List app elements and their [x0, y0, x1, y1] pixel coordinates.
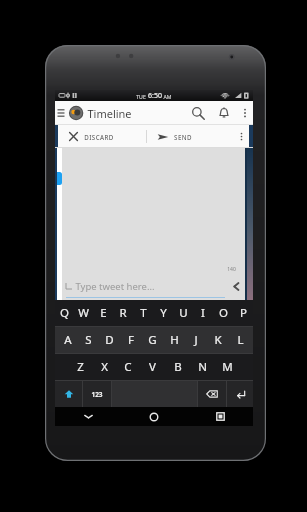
staticText: AM — [163, 93, 172, 100]
staticText: C — [124, 359, 132, 375]
button[interactable]: O — [213, 300, 233, 326]
staticText: 140 — [227, 266, 236, 273]
staticText: SEND — [174, 133, 192, 141]
button[interactable]: A — [57, 327, 78, 353]
button[interactable]: J — [185, 327, 207, 353]
button[interactable]: Shift — [55, 381, 82, 407]
button[interactable]: Backspace — [198, 381, 226, 407]
staticText: D — [105, 332, 114, 348]
button[interactable]: Open navigation drawer — [55, 101, 87, 125]
staticText: Z — [77, 359, 84, 375]
button[interactable]: I — [193, 300, 213, 326]
button[interactable]: M — [215, 354, 240, 380]
button[interactable]: S — [78, 327, 99, 353]
staticText: U — [179, 305, 188, 321]
staticText: Y — [160, 305, 167, 321]
button[interactable]: DISCARD — [59, 125, 146, 148]
button[interactable]: D — [99, 327, 120, 353]
staticText: J — [194, 332, 198, 348]
staticText: H — [170, 332, 179, 348]
button[interactable]: X — [92, 354, 116, 380]
button[interactable]: Previous — [227, 275, 245, 297]
staticText: P — [240, 305, 247, 321]
button[interactable]: Hide keyboard — [55, 407, 121, 426]
staticText: X — [101, 359, 108, 375]
staticText: F — [128, 332, 134, 348]
button[interactable]: V — [140, 354, 165, 380]
button[interactable]: P — [233, 300, 253, 326]
button[interactable]: Notifications — [211, 101, 237, 125]
button[interactable]: More options — [234, 125, 248, 148]
button[interactable]: L — [229, 327, 251, 353]
button[interactable]: 123 — [83, 381, 111, 407]
button[interactable]: Search — [185, 101, 211, 125]
button[interactable]: Q — [55, 300, 74, 326]
staticText: TUE — [136, 93, 146, 100]
staticText: O — [219, 305, 228, 321]
button[interactable]: Y — [153, 300, 173, 326]
staticText: R — [119, 305, 127, 321]
staticText: L — [237, 332, 244, 348]
button[interactable]: Enter — [227, 381, 253, 407]
staticText: A — [64, 332, 72, 348]
button[interactable]: N — [190, 354, 215, 380]
staticText: DISCARD — [84, 133, 114, 141]
button[interactable]: More options — [237, 101, 253, 125]
staticText: I — [201, 305, 205, 321]
button[interactable]: E — [93, 300, 113, 326]
staticText: E — [100, 305, 107, 321]
button[interactable]: W — [74, 300, 93, 326]
staticText: Q — [60, 305, 69, 321]
button[interactable]: R — [113, 300, 133, 326]
staticText: W — [78, 305, 89, 321]
staticText: G — [148, 332, 157, 348]
staticText: B — [174, 359, 182, 375]
button[interactable]: C — [116, 354, 140, 380]
staticText: 6:50 — [148, 91, 162, 101]
button[interactable]: K — [207, 327, 229, 353]
staticText: V — [149, 359, 156, 375]
staticText: 123 — [91, 390, 103, 399]
button[interactable]: B — [165, 354, 190, 380]
button[interactable]: Type tweet here... — [75, 275, 227, 297]
button[interactable]: Recent apps — [187, 407, 253, 426]
button[interactable]: Home — [121, 407, 187, 426]
button[interactable]: SEND — [147, 125, 234, 148]
button[interactable]: H — [163, 327, 185, 353]
staticText: Timeline — [87, 106, 132, 121]
staticText: S — [85, 332, 92, 348]
button[interactable]: T — [133, 300, 153, 326]
button[interactable]: U — [173, 300, 193, 326]
staticText: K — [214, 332, 222, 348]
button[interactable]: G — [141, 327, 163, 353]
staticText: T — [140, 305, 147, 321]
button[interactable]: F — [120, 327, 141, 353]
staticText: N — [198, 359, 207, 375]
button[interactable]: Z — [68, 354, 92, 380]
staticText: M — [222, 359, 233, 375]
staticText: Type tweet here... — [75, 280, 155, 293]
